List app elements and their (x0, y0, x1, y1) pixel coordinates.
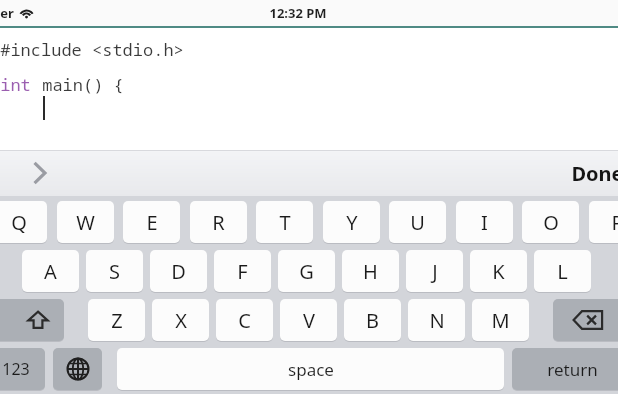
staticText: U (410, 209, 425, 236)
staticText: er (0, 4, 14, 22)
button[interactable]: D (150, 250, 207, 292)
staticText: M (491, 307, 510, 334)
staticText: W (76, 209, 95, 236)
staticText: return (547, 358, 598, 381)
button[interactable]: Done (571, 160, 618, 187)
button[interactable]: Shift (0, 299, 64, 341)
button[interactable]: I (456, 201, 513, 243)
button[interactable]: B (344, 299, 401, 341)
button[interactable]: O (522, 201, 579, 243)
staticText: A (44, 258, 57, 285)
staticText: space (288, 358, 334, 381)
button[interactable]: R (190, 201, 247, 243)
button[interactable]: S (86, 250, 143, 292)
button[interactable]: space (117, 348, 504, 390)
staticText: E (146, 209, 158, 236)
staticText: X (175, 307, 187, 334)
staticText: T (279, 209, 291, 236)
button[interactable]: G (278, 250, 335, 292)
button[interactable]: Next keyboard (53, 348, 102, 390)
button[interactable]: 123 (0, 348, 45, 390)
button[interactable]: T (256, 201, 313, 243)
staticText: Done (571, 160, 618, 187)
button[interactable]: A (22, 250, 79, 292)
staticText: C (238, 307, 251, 334)
staticText: J (432, 258, 438, 285)
button[interactable]: F (214, 250, 271, 292)
staticText: int (0, 73, 31, 96)
staticText: R (212, 209, 225, 236)
button[interactable]: L (534, 250, 591, 292)
staticText: I (481, 209, 488, 236)
staticText: 123 (2, 358, 30, 380)
staticText: 12:32 PM (269, 4, 327, 22)
button[interactable]: W (57, 201, 114, 243)
staticText: P (611, 209, 618, 236)
button[interactable]: P (589, 201, 618, 243)
button[interactable]: return (512, 348, 618, 390)
button[interactable]: U (389, 201, 446, 243)
button[interactable]: M (472, 299, 529, 341)
button[interactable]: H (342, 250, 399, 292)
staticText: Y (346, 209, 358, 236)
staticText: N (429, 307, 445, 334)
button[interactable]: C (216, 299, 273, 341)
button[interactable]: Z (88, 299, 145, 341)
button[interactable]: N (408, 299, 465, 341)
staticText: main() { (42, 73, 124, 96)
button[interactable]: K (470, 250, 527, 292)
staticText: H (363, 258, 378, 285)
staticText: V (303, 307, 315, 334)
button[interactable]: Next (22, 156, 56, 190)
staticText: B (366, 307, 379, 334)
button[interactable]: X (152, 299, 209, 341)
staticText: #include <stdio.h> (0, 38, 184, 61)
staticText: Z (111, 307, 123, 334)
button[interactable]: Y (323, 201, 380, 243)
staticText: S (109, 258, 120, 285)
staticText: K (492, 258, 505, 285)
staticText: G (299, 258, 314, 285)
button[interactable]: V (280, 299, 337, 341)
button[interactable]: E (123, 201, 180, 243)
staticText: Q (11, 209, 27, 236)
button[interactable]: J (406, 250, 463, 292)
button[interactable]: Q (0, 201, 47, 243)
staticText: O (543, 209, 559, 236)
staticText: D (171, 258, 186, 285)
button[interactable]: Backspace (553, 299, 618, 341)
staticText: F (237, 258, 248, 285)
staticText: L (557, 258, 568, 285)
